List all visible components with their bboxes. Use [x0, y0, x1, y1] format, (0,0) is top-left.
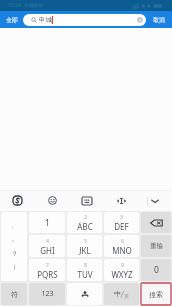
staticText: 123 [41, 289, 54, 299]
button[interactable]: Emoji [35, 190, 70, 211]
staticText: WXYZ [111, 269, 133, 280]
button[interactable]: Move cursor [104, 190, 138, 211]
staticText: 7 [46, 261, 49, 268]
staticText: PQRS [37, 269, 58, 280]
staticText: 6 [121, 237, 124, 244]
button[interactable]: 、 [1, 212, 27, 281]
button[interactable]: 0 [141, 259, 171, 281]
button[interactable]: Sogou input [0, 190, 35, 211]
staticText: 5 [84, 237, 87, 244]
button[interactable]: 申城 [23, 14, 146, 26]
button[interactable]: Keyboard layout [70, 190, 104, 211]
button[interactable]: 4 [29, 235, 65, 257]
staticText: 申城 [39, 16, 52, 24]
button[interactable]: Clear text [137, 17, 143, 23]
button[interactable]: 9 [104, 259, 139, 281]
staticText: 、 [11, 221, 18, 229]
button[interactable]: Backspace [141, 212, 171, 233]
staticText: 中 [114, 289, 121, 298]
staticText: 。 [11, 235, 18, 243]
staticText: DEF [114, 221, 129, 232]
staticText: 取消 [153, 16, 165, 23]
staticText: 英 [124, 293, 129, 299]
staticText: 符 [11, 290, 18, 299]
staticText: 2 [84, 213, 87, 220]
staticText: 搜索 [149, 290, 163, 299]
button[interactable]: Hide keyboard [138, 190, 172, 211]
button[interactable]: 全部 [0, 11, 23, 28]
staticText: 全部 [6, 16, 18, 23]
button[interactable]: Space [67, 283, 102, 305]
button[interactable]: 1 [29, 212, 65, 233]
staticText: ABC [77, 221, 93, 232]
staticText: GHI [40, 245, 55, 256]
button[interactable]: 7 [29, 259, 65, 281]
staticText: 9 [121, 261, 124, 268]
button[interactable]: 5 [67, 235, 102, 257]
button[interactable]: 中 [104, 283, 139, 305]
staticText: 重输 [150, 242, 163, 250]
staticText: 4 [46, 237, 49, 244]
staticText: ？ [11, 250, 18, 258]
staticText: 1 [45, 217, 50, 229]
button[interactable]: 2 [67, 212, 102, 233]
button[interactable]: 123 [29, 283, 65, 305]
button[interactable]: 搜索 [141, 283, 171, 305]
button[interactable]: 重输 [141, 235, 171, 257]
button[interactable]: 6 [104, 235, 139, 257]
button[interactable]: 3 [104, 212, 139, 233]
staticText: MNO [112, 245, 132, 256]
button[interactable]: 8 [67, 259, 102, 281]
staticText: TUV [77, 269, 93, 280]
button[interactable]: 取消 [146, 11, 172, 28]
staticText: 中国移动 [24, 3, 43, 9]
staticText: ！ [11, 264, 18, 272]
button[interactable]: 符 [1, 283, 27, 305]
staticText: 3 [120, 213, 123, 220]
staticText: 0 [154, 264, 159, 276]
staticText: JKL [79, 245, 91, 256]
staticText: 10:24 [8, 2, 21, 9]
staticText: 8 [84, 261, 87, 268]
